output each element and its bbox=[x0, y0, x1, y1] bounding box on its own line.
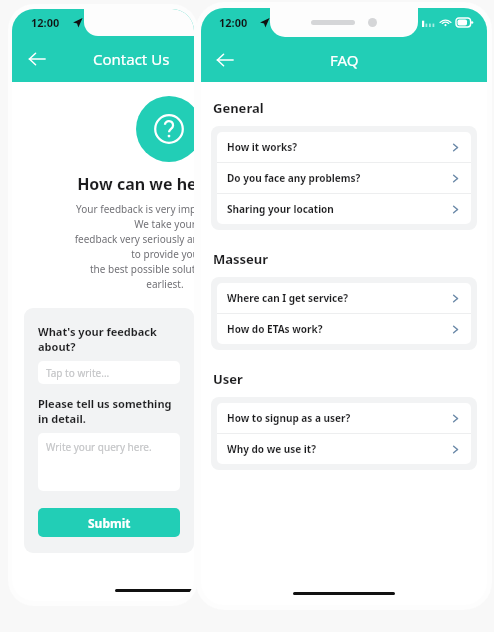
staticText: Tap to write... bbox=[46, 366, 110, 380]
staticText: How to signup as a user? bbox=[227, 411, 450, 425]
staticText: Please tell us something in detail. bbox=[38, 396, 180, 426]
button[interactable]: Sharing your location bbox=[217, 194, 471, 224]
button[interactable]: How it works? bbox=[217, 132, 471, 162]
staticText: Where can I get service? bbox=[227, 291, 450, 305]
staticText: Write your query here. bbox=[46, 440, 152, 454]
staticText: Submit bbox=[88, 515, 131, 531]
staticText: Contact Us bbox=[93, 49, 170, 69]
staticText: How do ETAs work? bbox=[227, 322, 450, 336]
button[interactable]: Why do we use it? bbox=[217, 434, 471, 464]
button[interactable]: Where can I get service? bbox=[217, 283, 471, 313]
button[interactable]: Tap to write... bbox=[38, 361, 180, 384]
button[interactable]: Write your query here. bbox=[38, 433, 180, 491]
staticText: User bbox=[213, 370, 243, 388]
staticText: How can we help you? bbox=[74, 173, 194, 195]
button[interactable]: Do you face any problems? bbox=[217, 163, 471, 193]
staticText: What's your feedback about? bbox=[38, 324, 180, 354]
staticText: Masseur bbox=[213, 250, 269, 268]
staticText: FAQ bbox=[330, 50, 359, 70]
staticText: Do you face any problems? bbox=[227, 171, 450, 185]
button[interactable]: How do ETAs work? bbox=[217, 314, 471, 344]
staticText: Why do we use it? bbox=[227, 442, 450, 456]
staticText: How it works? bbox=[227, 140, 450, 154]
staticText: 12:00 bbox=[219, 15, 248, 30]
button[interactable]: Back bbox=[22, 44, 52, 74]
button[interactable]: Back bbox=[210, 45, 240, 75]
button[interactable]: How to signup as a user? bbox=[217, 403, 471, 433]
staticText: Sharing your location bbox=[227, 202, 450, 216]
staticText: 12:00 bbox=[31, 15, 60, 30]
staticText: Your feedback is very important to us. W… bbox=[74, 202, 194, 291]
staticText: General bbox=[213, 99, 264, 117]
button[interactable]: Submit bbox=[38, 508, 180, 537]
